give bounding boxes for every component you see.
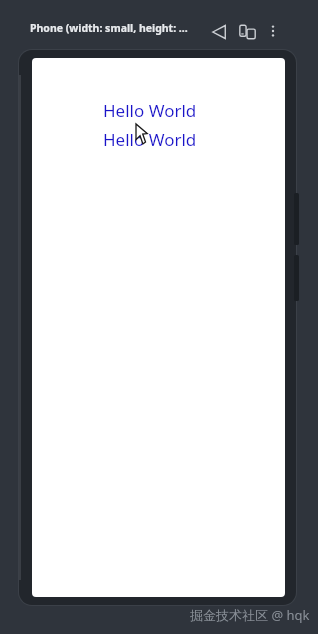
staticText: Phone (width: small, height: … bbox=[30, 21, 188, 35]
button[interactable]: Run preview bbox=[208, 20, 232, 44]
staticText: 掘金技术社区 @ hqk bbox=[190, 606, 310, 624]
button[interactable]: More options bbox=[262, 20, 284, 42]
staticText: Hello World bbox=[103, 128, 197, 151]
button[interactable]: Device configuration bbox=[236, 20, 260, 44]
staticText: Hello World bbox=[103, 99, 197, 122]
